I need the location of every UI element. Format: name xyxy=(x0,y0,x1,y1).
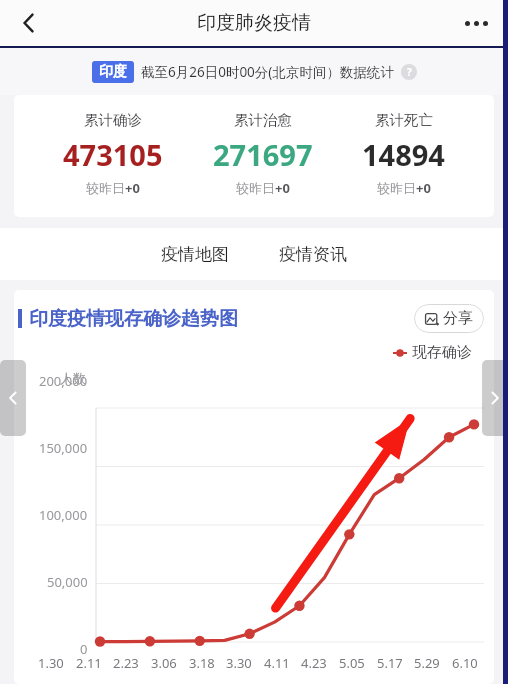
staticText: 6.10 xyxy=(452,654,478,672)
staticText: 截至6月26日0时00分(北京时间）数据统计 xyxy=(141,63,394,81)
staticText: 人数 xyxy=(60,370,86,386)
staticText: 4.23 xyxy=(301,654,327,672)
staticText: 印度 xyxy=(99,63,127,81)
staticText: 271697 xyxy=(213,135,313,174)
staticText: 1.30 xyxy=(38,654,64,672)
button[interactable]: Next xyxy=(482,360,508,436)
button[interactable]: Help xyxy=(401,64,417,80)
staticText: 3.30 xyxy=(226,654,252,672)
staticText: 200,000 xyxy=(39,372,88,390)
button[interactable]: 疫情地图 xyxy=(153,236,237,273)
staticText: 较昨日 xyxy=(86,180,125,196)
staticText: 累计死亡 xyxy=(375,111,433,129)
staticText: 473105 xyxy=(63,135,163,174)
staticText: 5.17 xyxy=(377,654,403,672)
staticText: ? xyxy=(407,65,412,79)
staticText: 14894 xyxy=(362,135,445,174)
staticText: 印度疫情现存确诊趋势图 xyxy=(29,307,238,331)
staticText: 较昨日 xyxy=(377,180,416,196)
staticText: 5.29 xyxy=(414,654,440,672)
staticText: +0 xyxy=(416,179,431,197)
staticText: 2.23 xyxy=(113,654,139,672)
staticText: 3.06 xyxy=(151,654,177,672)
staticText: +0 xyxy=(275,179,290,197)
staticText: 累计治愈 xyxy=(234,111,292,129)
staticText: 分享 xyxy=(443,309,473,328)
staticText: 累计确诊 xyxy=(84,111,142,129)
staticText: 疫情地图 xyxy=(161,244,229,265)
button[interactable]: More options xyxy=(454,1,498,45)
staticText: +0 xyxy=(125,179,140,197)
staticText: 100,000 xyxy=(39,506,88,524)
button[interactable]: Back xyxy=(6,0,52,46)
button[interactable]: Previous xyxy=(0,360,26,436)
staticText: 疫情资讯 xyxy=(279,244,347,265)
button[interactable]: 分享 xyxy=(414,304,484,333)
staticText: 50,000 xyxy=(47,573,88,591)
staticText: 现存确诊 xyxy=(412,343,472,362)
staticText: 3.18 xyxy=(189,654,215,672)
button[interactable]: 印度 xyxy=(99,63,127,81)
button[interactable]: 疫情资讯 xyxy=(271,236,355,273)
staticText: 0 xyxy=(80,640,88,658)
staticText: 4.11 xyxy=(264,654,290,672)
staticText: 5.05 xyxy=(339,654,365,672)
staticText: 2.11 xyxy=(76,654,102,672)
staticText: 较昨日 xyxy=(236,180,275,196)
staticText: 150,000 xyxy=(39,439,88,457)
staticText: 印度肺炎疫情 xyxy=(197,11,311,35)
